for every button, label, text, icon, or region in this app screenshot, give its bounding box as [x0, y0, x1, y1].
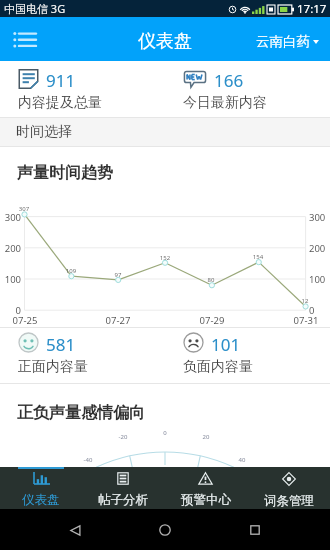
- staticText: 仪表盘: [22, 492, 60, 508]
- staticText: 200: [309, 242, 330, 255]
- staticText: 307: [12, 205, 36, 213]
- staticText: 109: [59, 267, 83, 275]
- staticText: 07-25: [7, 314, 43, 327]
- staticText: 166: [214, 69, 244, 92]
- staticText: 200: [0, 242, 21, 255]
- staticText: 正面内容量: [18, 358, 88, 376]
- staticText: 97: [106, 271, 130, 279]
- staticText: 词条管理: [264, 493, 314, 509]
- staticText: 152: [153, 254, 177, 262]
- staticText: 100: [0, 273, 21, 286]
- staticText: 云南白药: [256, 33, 310, 50]
- staticText: 17:17: [297, 1, 327, 17]
- staticText: 内容提及总量: [18, 94, 102, 112]
- staticText: 07-31: [288, 314, 324, 327]
- button[interactable]: 166: [165, 61, 330, 118]
- button[interactable]: 预警中心: [164, 467, 247, 509]
- staticText: 80: [199, 276, 223, 284]
- staticText: 07-27: [100, 314, 136, 327]
- button[interactable]: Menu: [3, 17, 45, 61]
- staticText: 帖子分析: [98, 492, 148, 508]
- button[interactable]: 时间选择: [0, 118, 330, 146]
- staticText: 0: [153, 429, 177, 437]
- staticText: 12: [293, 297, 317, 305]
- button[interactable]: Back: [60, 515, 90, 545]
- button[interactable]: 帖子分析: [82, 467, 164, 509]
- staticText: 40: [230, 456, 254, 464]
- button[interactable]: 仪表盘: [0, 467, 82, 509]
- staticText: 时间选择: [16, 123, 72, 141]
- staticText: 911: [46, 69, 76, 92]
- staticText: 负面内容量: [183, 358, 253, 376]
- button[interactable]: Home: [150, 515, 180, 545]
- staticText: 101: [211, 333, 241, 356]
- button[interactable]: Recents: [240, 515, 270, 545]
- staticText: 07-29: [194, 314, 230, 327]
- button[interactable]: 911: [0, 61, 165, 118]
- staticText: 300: [0, 211, 21, 224]
- staticText: -40: [76, 456, 100, 464]
- button[interactable]: 581: [0, 328, 165, 383]
- staticText: 正负声量感情偏向: [17, 403, 145, 423]
- staticText: 0: [0, 304, 21, 317]
- staticText: 预警中心: [181, 492, 231, 508]
- staticText: 154: [246, 253, 270, 261]
- staticText: 今日最新内容: [183, 94, 267, 112]
- button[interactable]: 词条管理: [247, 467, 330, 509]
- staticText: 中国电信 3G: [4, 1, 66, 16]
- staticText: 仪表盘: [138, 30, 192, 53]
- staticText: 声量时间趋势: [17, 163, 113, 183]
- staticText: 581: [46, 333, 76, 356]
- staticText: 20: [194, 433, 218, 441]
- staticText: 300: [309, 211, 330, 224]
- button[interactable]: 云南白药: [256, 33, 319, 50]
- staticText: -20: [111, 433, 135, 441]
- button[interactable]: 101: [165, 328, 330, 383]
- staticText: 100: [309, 273, 330, 286]
- staticText: 0: [309, 304, 330, 317]
